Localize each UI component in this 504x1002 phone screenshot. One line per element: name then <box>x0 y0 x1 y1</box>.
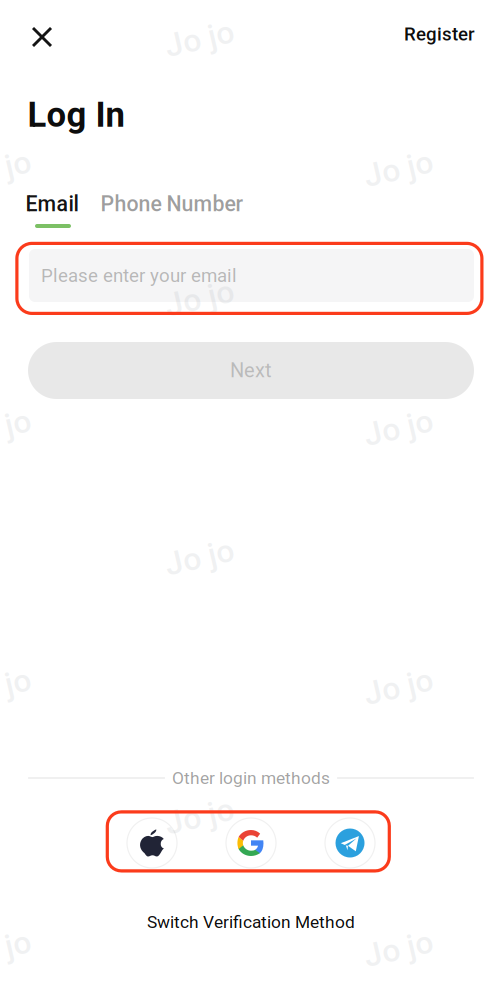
staticText: Jo jo <box>363 668 433 706</box>
staticText: Jo jo <box>0 409 31 447</box>
button[interactable]: Register <box>394 13 485 55</box>
staticText: Email <box>25 191 78 216</box>
staticText: Jo jo <box>363 150 433 188</box>
staticText: Next <box>230 359 272 382</box>
button[interactable]: Sign in with Apple <box>127 818 177 868</box>
staticText: Jo jo <box>0 668 31 706</box>
button[interactable]: Phone Number <box>96 186 247 221</box>
staticText: Other login methods <box>172 768 330 788</box>
staticText: Jo jo <box>363 930 433 968</box>
staticText: Jo jo <box>164 280 234 317</box>
staticText: Jo jo <box>363 409 433 447</box>
staticText: Jo jo <box>164 539 234 576</box>
staticText: Register <box>404 23 475 45</box>
staticText: Switch Verification Method <box>147 912 355 932</box>
staticText: Jo jo <box>0 150 31 188</box>
button[interactable]: Switch Verification Method <box>135 902 367 942</box>
staticText: Jo jo <box>0 930 31 968</box>
button[interactable]: Sign in with Google <box>226 818 276 868</box>
staticText: Jo jo <box>164 798 234 835</box>
staticText: Log In <box>27 95 124 135</box>
button[interactable]: Next <box>28 342 474 399</box>
button[interactable]: Sign in with Telegram <box>325 818 375 868</box>
button[interactable]: Email <box>21 186 82 221</box>
staticText: Please enter your email <box>41 265 237 286</box>
staticText: Jo jo <box>164 20 234 58</box>
staticText: Phone Number <box>100 191 243 216</box>
button[interactable]: Close <box>20 15 64 59</box>
